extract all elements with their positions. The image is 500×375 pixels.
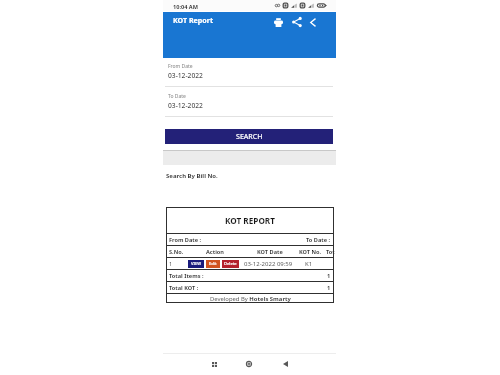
button[interactable]: Home xyxy=(238,353,260,375)
staticText: SEARCH xyxy=(236,131,263,141)
staticText: Action xyxy=(206,248,224,256)
button[interactable]: SEARCH xyxy=(165,129,333,144)
staticText: To Date : xyxy=(306,236,331,244)
staticText: Edit xyxy=(209,261,217,267)
staticText: K1 xyxy=(305,260,313,268)
button[interactable]: Search By Bill No. xyxy=(163,168,336,180)
staticText: 03-12-2022 xyxy=(168,71,203,80)
button[interactable]: To Date xyxy=(165,90,334,117)
staticText: KOT REPORT xyxy=(225,215,275,226)
staticText: KOT Date xyxy=(257,248,283,256)
staticText: 1 xyxy=(327,272,331,280)
staticText: From Date : xyxy=(169,236,202,244)
button[interactable]: Print xyxy=(270,14,286,30)
button[interactable]: Share xyxy=(289,14,305,30)
button[interactable]: Recent apps xyxy=(203,353,225,375)
staticText: Total KOT : xyxy=(169,284,199,292)
staticText: Total Items : xyxy=(169,272,204,280)
staticText: KOT No. xyxy=(299,248,322,256)
staticText: 1 xyxy=(327,284,331,292)
staticText: Search By Bill No. xyxy=(166,172,218,180)
button[interactable]: KOT Report xyxy=(173,15,213,25)
button[interactable]: Back xyxy=(305,14,321,30)
staticText: From Date xyxy=(168,63,193,70)
button[interactable]: From Date xyxy=(165,60,334,87)
staticText: Tot xyxy=(326,248,335,256)
button[interactable]: Back xyxy=(274,353,296,375)
staticText: To Date xyxy=(168,93,186,100)
staticText: Developed By Hotels Smarty xyxy=(210,295,291,303)
staticText: Delete xyxy=(224,261,237,267)
staticText: VIEW xyxy=(191,261,202,267)
button[interactable]: Edit xyxy=(206,260,220,268)
button[interactable]: VIEW xyxy=(188,260,204,268)
staticText: 10:04 AM xyxy=(173,3,198,11)
staticText: KOT Report xyxy=(173,15,213,25)
staticText: 03-12-2022 xyxy=(168,101,203,110)
staticText: 1 xyxy=(169,260,173,268)
staticText: S.No. xyxy=(169,248,184,256)
staticText: 03-12-2022 09:59 xyxy=(244,260,293,268)
button[interactable]: Delete xyxy=(222,260,239,268)
